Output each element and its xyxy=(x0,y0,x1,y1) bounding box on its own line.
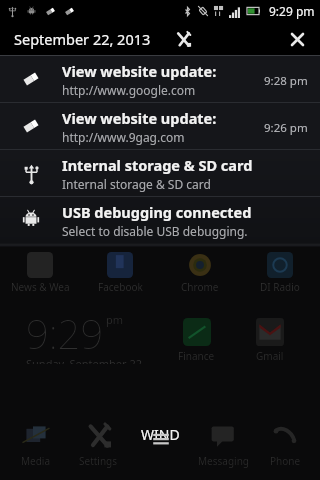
staticText: Finance xyxy=(178,349,215,363)
button[interactable]: View website update: xyxy=(0,56,320,102)
staticText: pm xyxy=(106,312,124,327)
staticText: View website update: xyxy=(62,61,217,81)
staticText: Media xyxy=(21,454,51,468)
button[interactable]: Phone xyxy=(254,421,316,468)
button[interactable]: DI Radio xyxy=(240,252,320,292)
staticText: Internal storage & SD card xyxy=(62,155,253,175)
button[interactable]: Chrome xyxy=(160,252,240,292)
staticText: USB debugging connected xyxy=(62,202,252,222)
button[interactable]: Internal storage & SD card xyxy=(0,150,320,196)
button[interactable]: USB debugging connected xyxy=(0,197,320,243)
staticText: Settings xyxy=(79,454,118,468)
staticText: 9:29 xyxy=(26,306,104,360)
staticText: WIND xyxy=(141,425,180,444)
button[interactable]: Apps xyxy=(130,423,192,466)
staticText: http://www.9gag.com xyxy=(62,129,185,145)
staticText: Gmail xyxy=(256,349,284,363)
button[interactable]: Settings xyxy=(170,26,196,52)
staticText: http://www.google.com xyxy=(62,82,196,98)
staticText: DI Radio xyxy=(260,280,300,292)
staticText: Sunday, September 22 xyxy=(26,356,142,364)
button[interactable]: Facebook xyxy=(80,252,160,292)
staticText: Internal storage & SD card connected to … xyxy=(62,176,258,192)
staticText: Chrome xyxy=(181,280,219,292)
staticText: 9:29 pm xyxy=(269,3,315,19)
button[interactable]: View website update: xyxy=(0,103,320,149)
staticText: View website update: xyxy=(62,108,217,128)
button[interactable]: Messaging xyxy=(192,421,254,468)
button[interactable]: News & Wea xyxy=(0,252,80,292)
button[interactable]: Media xyxy=(4,421,67,468)
staticText: Messaging xyxy=(198,454,249,468)
staticText: 9:26 pm xyxy=(264,120,308,136)
staticText: Facebook xyxy=(98,280,143,292)
staticText: News & Wea xyxy=(11,280,70,292)
button[interactable]: Close notifications xyxy=(283,25,311,53)
staticText: 9:28 pm xyxy=(264,73,308,89)
button[interactable]: Settings xyxy=(67,421,130,468)
staticText: September 22, 2013 xyxy=(14,29,151,49)
staticText: Select to disable USB debugging. xyxy=(62,223,248,239)
staticText: Phone xyxy=(270,454,301,468)
